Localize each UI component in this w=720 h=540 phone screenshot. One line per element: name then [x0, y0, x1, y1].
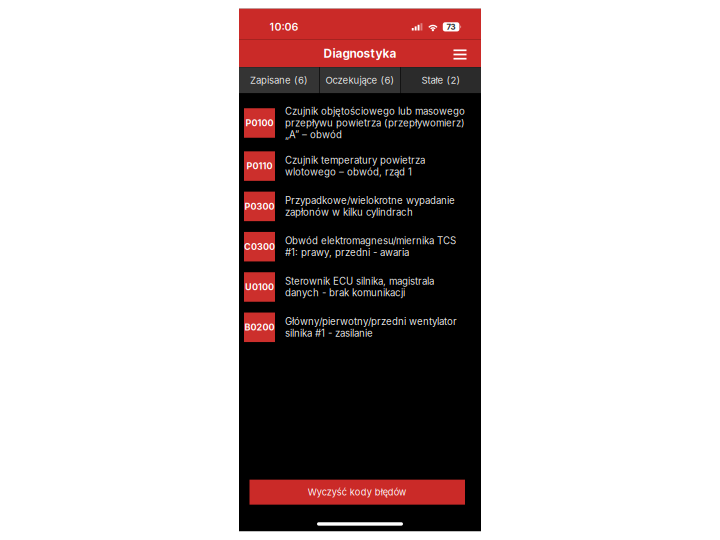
staticText: P0100 [245, 118, 273, 128]
staticText: Główny/pierwotny/przedni wentylator siln… [285, 316, 457, 339]
staticText: Obwód elektromagnesu/miernika TCS #1: pr… [285, 235, 456, 258]
staticText: Wyczyść kody błędów [308, 487, 407, 498]
staticText: Czujnik temperatury powietrza wlotowego … [285, 154, 425, 178]
staticText: Sterownik ECU silnika, magistrala danych… [285, 275, 434, 299]
button[interactable]: P0300 [239, 186, 481, 226]
staticText: Przypadkowe/wielokrotne wypadanie zapłon… [285, 195, 455, 218]
button[interactable]: U0100 [239, 267, 481, 307]
staticText: Oczekujące (6) [325, 74, 394, 86]
button[interactable]: Zapisane (6) [239, 67, 319, 93]
staticText: 73 [447, 22, 456, 32]
staticText: Diagnostyka [323, 46, 396, 61]
button[interactable]: Stałe (2) [401, 67, 481, 93]
staticText: Zapisane (6) [250, 74, 308, 86]
button[interactable]: B0200 [239, 307, 481, 347]
staticText: P0300 [244, 201, 274, 212]
staticText: B0200 [244, 322, 274, 333]
button[interactable]: P0100 [239, 100, 481, 146]
staticText: 10:06 [269, 20, 298, 33]
staticText: Stałe (2) [421, 74, 460, 86]
staticText: P0110 [246, 161, 272, 171]
button[interactable]: Wyczyść kody błędów [249, 480, 465, 505]
button[interactable]: Oczekujące (6) [320, 67, 400, 93]
staticText: Czujnik objętościowego lub masowego prze… [285, 105, 465, 141]
button[interactable]: Menu [446, 42, 473, 65]
button[interactable]: C0300 [239, 226, 481, 267]
button[interactable]: P0110 [239, 146, 481, 186]
staticText: U0100 [245, 281, 274, 292]
staticText: C0300 [244, 241, 275, 252]
